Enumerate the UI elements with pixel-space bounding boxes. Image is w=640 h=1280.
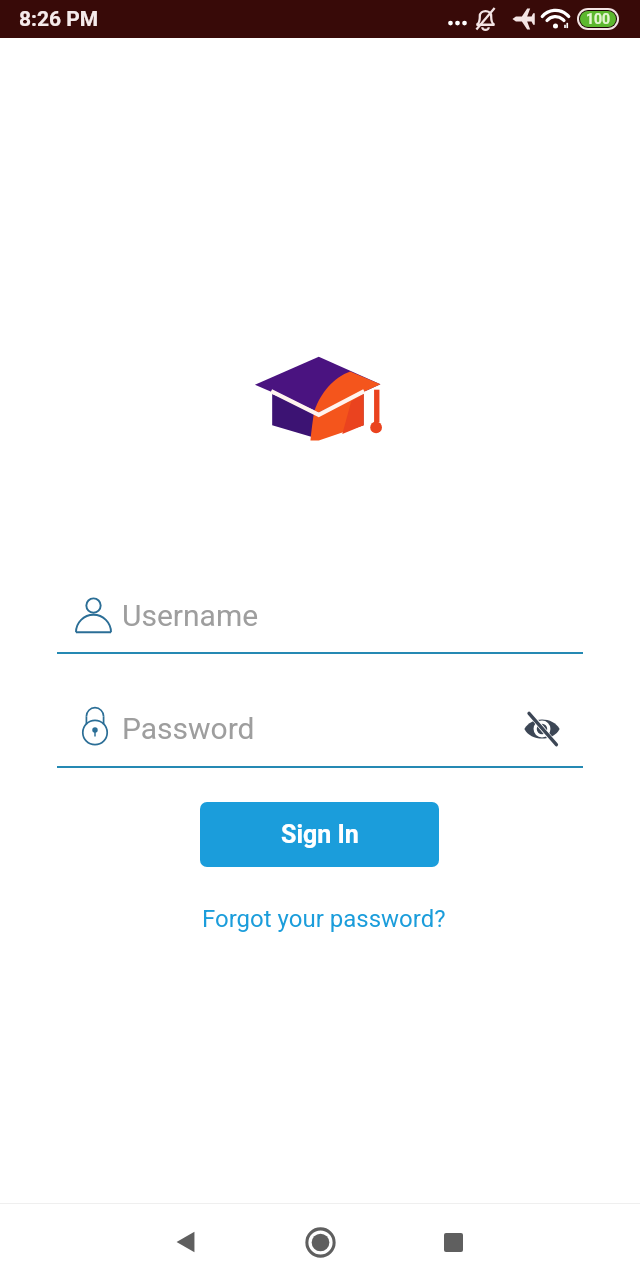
button[interactable]: Show password [518, 705, 566, 753]
button[interactable]: Password [57, 706, 583, 768]
button[interactable]: Forgot your password? [192, 898, 456, 940]
button[interactable]: Sign In [200, 802, 439, 867]
staticText: 100 [586, 11, 611, 27]
staticText: Username [122, 598, 259, 633]
button[interactable]: Back [120, 1204, 250, 1280]
button[interactable]: Home [255, 1204, 385, 1280]
staticText: 8:26 PM [19, 7, 99, 32]
staticText: Sign In [281, 820, 359, 849]
staticText: Forgot your password? [202, 905, 446, 933]
button[interactable]: Recent apps [388, 1204, 518, 1280]
button[interactable]: Username [57, 592, 583, 654]
staticText: Password [122, 711, 255, 746]
